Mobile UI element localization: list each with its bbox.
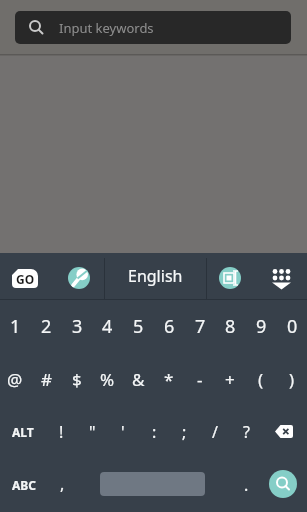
staticText: English — [128, 265, 183, 287]
button[interactable] — [100, 472, 205, 496]
staticText: @ — [7, 368, 23, 391]
button[interactable]: ? — [231, 406, 261, 458]
staticText: # — [41, 368, 52, 391]
button[interactable] — [266, 265, 296, 291]
button[interactable]: English — [105, 253, 206, 299]
staticText: 6 — [164, 314, 175, 339]
button[interactable]: 3 — [62, 300, 92, 352]
staticText: / — [212, 421, 218, 443]
button[interactable]: + — [215, 353, 245, 405]
button[interactable]: / — [200, 406, 230, 458]
staticText: ? — [243, 421, 250, 443]
button[interactable]: ( — [246, 353, 276, 405]
button[interactable]: " — [77, 406, 107, 458]
button[interactable]: ) — [277, 353, 307, 405]
button[interactable] — [219, 267, 241, 289]
button[interactable]: 6 — [154, 300, 184, 352]
button[interactable]: 2 — [31, 300, 61, 352]
button[interactable]: % — [92, 353, 122, 405]
button[interactable]: - — [185, 353, 215, 405]
staticText: 2 — [41, 314, 52, 339]
staticText: 8 — [225, 314, 236, 339]
staticText: " — [89, 421, 96, 443]
staticText: 0 — [287, 314, 298, 339]
button[interactable]: 1 — [0, 300, 30, 352]
staticText: & — [132, 368, 145, 391]
button[interactable]: 5 — [123, 300, 153, 352]
staticText: ) — [289, 368, 295, 391]
staticText: : — [152, 421, 157, 443]
staticText: . — [244, 474, 249, 496]
staticText: ' — [121, 421, 125, 443]
button[interactable]: 0 — [277, 300, 307, 352]
staticText: GO — [16, 271, 35, 287]
button[interactable]: * — [154, 353, 184, 405]
button[interactable]: Input keywords — [15, 11, 291, 44]
button[interactable]: 9 — [246, 300, 276, 352]
button[interactable]: GO — [10, 268, 40, 289]
button[interactable]: ALT — [0, 406, 46, 458]
staticText: ( — [258, 368, 264, 391]
button[interactable]: 8 — [215, 300, 245, 352]
staticText: 9 — [256, 314, 267, 339]
staticText: , — [60, 473, 65, 495]
staticText: - — [197, 368, 203, 391]
button[interactable]: 7 — [185, 300, 215, 352]
staticText: + — [225, 368, 235, 391]
staticText: ! — [59, 421, 64, 443]
staticText: ABC — [12, 477, 36, 493]
staticText: * — [164, 368, 174, 391]
button[interactable]: . — [231, 459, 261, 511]
button[interactable] — [261, 405, 307, 457]
staticText: Input keywords — [59, 19, 154, 37]
button[interactable]: # — [31, 353, 61, 405]
staticText: $ — [72, 368, 82, 391]
button[interactable]: ! — [46, 406, 76, 458]
staticText: ; — [182, 421, 187, 443]
staticText: 7 — [195, 314, 206, 339]
button[interactable]: & — [123, 353, 153, 405]
button[interactable] — [269, 470, 297, 498]
button[interactable]: @ — [0, 353, 30, 405]
button[interactable]: ' — [108, 406, 138, 458]
button[interactable] — [68, 267, 90, 289]
staticText: % — [100, 368, 115, 391]
staticText: 5 — [133, 314, 144, 339]
button[interactable]: $ — [62, 353, 92, 405]
button[interactable]: 4 — [92, 300, 122, 352]
staticText: 1 — [10, 314, 21, 339]
button[interactable]: ; — [169, 406, 199, 458]
button[interactable]: ABC — [1, 459, 47, 511]
staticText: 3 — [72, 314, 83, 339]
staticText: ALT — [12, 424, 34, 440]
button[interactable]: : — [139, 406, 169, 458]
staticText: 4 — [102, 314, 113, 339]
button[interactable]: , — [47, 459, 77, 511]
